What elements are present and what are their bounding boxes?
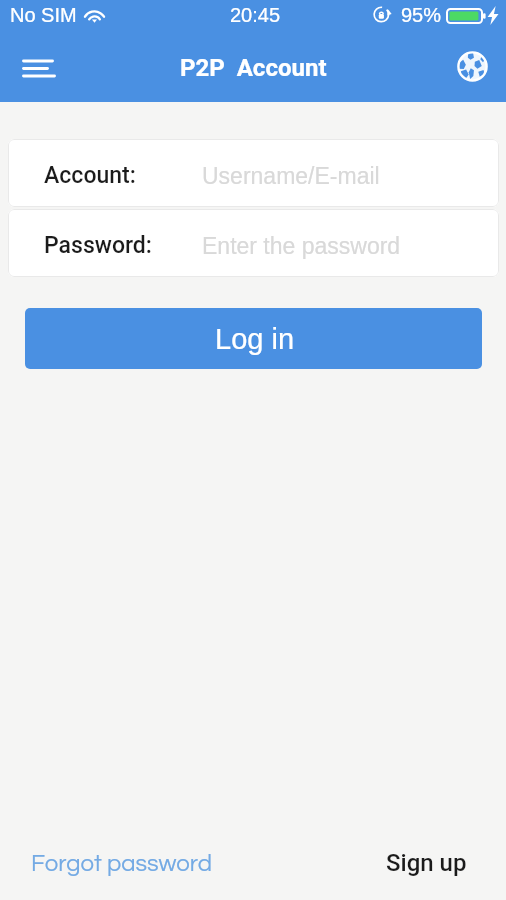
staticText: P2P Account: [180, 54, 327, 82]
button[interactable]: Change language: [444, 36, 506, 102]
staticText: Account:: [44, 162, 136, 189]
button[interactable]: Account:: [8, 139, 499, 207]
staticText: Password:: [44, 232, 152, 259]
button[interactable]: Open navigation menu: [7, 36, 69, 102]
staticText: Sign up: [386, 849, 467, 877]
staticText: Enter the password: [202, 233, 401, 259]
staticText: Username/E-mail: [202, 163, 380, 189]
staticText: 20:45: [230, 4, 281, 26]
button[interactable]: Forgot password: [15, 841, 229, 886]
staticText: 95%: [401, 4, 442, 26]
staticText: No SIM: [10, 4, 77, 26]
staticText: Log in: [215, 323, 295, 355]
staticText: Forgot password: [31, 851, 213, 876]
button[interactable]: Log in: [25, 308, 482, 369]
button[interactable]: Sign up: [370, 839, 483, 887]
button[interactable]: Password:: [8, 209, 499, 277]
